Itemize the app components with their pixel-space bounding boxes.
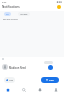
button[interactable]: Search (16, 86, 32, 100)
button[interactable]: Like (4, 77, 15, 83)
button[interactable]: Notifications (32, 86, 48, 100)
button[interactable]: New message (48, 65, 53, 70)
button[interactable]: All (4, 12, 11, 16)
staticText: Save (49, 79, 54, 82)
staticText: Like (9, 79, 13, 82)
staticText: Madison Reed (9, 66, 26, 69)
button[interactable]: Save (41, 77, 59, 83)
button[interactable]: Madison Reed (2, 64, 64, 70)
staticText: All (6, 13, 9, 16)
staticText: Recent activity (3, 18, 18, 21)
staticText: Unread (20, 13, 28, 16)
button[interactable]: Unread (18, 12, 30, 16)
staticText: Notifications (2, 5, 20, 9)
staticText: 9:30 (2, 1, 7, 4)
button[interactable]: Account (57, 5, 61, 9)
button[interactable]: Home (0, 86, 16, 100)
button[interactable]: Profile (48, 86, 64, 100)
